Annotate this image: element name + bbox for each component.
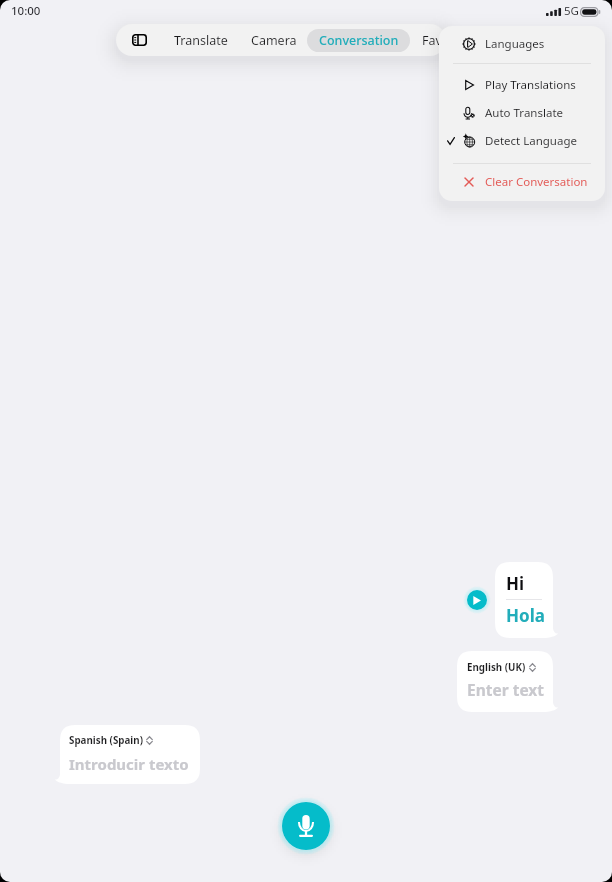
button[interactable]: Clear Conversation bbox=[439, 170, 605, 194]
button[interactable]: Hi bbox=[495, 562, 558, 638]
staticText: 5G bbox=[564, 3, 579, 19]
button[interactable]: Auto Translate bbox=[439, 101, 605, 125]
button[interactable]: Spanish (Spain) bbox=[69, 734, 153, 747]
button[interactable]: Sidebar bbox=[127, 28, 151, 52]
staticText: Languages bbox=[485, 36, 545, 52]
staticText: Conversation bbox=[319, 32, 399, 49]
staticText: 10:00 bbox=[11, 3, 41, 19]
button[interactable]: Play translation bbox=[467, 590, 487, 610]
button[interactable]: Record bbox=[282, 802, 330, 850]
staticText: Favourites bbox=[422, 32, 484, 49]
staticText: Auto Translate bbox=[485, 105, 564, 121]
staticText: Translate bbox=[174, 32, 228, 49]
button[interactable]: English (UK) bbox=[467, 661, 536, 674]
button[interactable]: Play Translations bbox=[439, 73, 605, 97]
staticText: Hola bbox=[506, 604, 545, 627]
staticText: Enter text bbox=[467, 679, 545, 700]
staticText: Play Translations bbox=[485, 77, 576, 93]
button[interactable]: Translate bbox=[162, 29, 240, 52]
button[interactable]: English (UK) bbox=[457, 651, 558, 712]
staticText: Detect Language bbox=[485, 133, 577, 149]
button[interactable]: Camera bbox=[239, 29, 309, 52]
button[interactable]: Languages bbox=[439, 32, 605, 56]
button[interactable]: Detect Language bbox=[439, 129, 605, 153]
staticText: Introducir texto bbox=[69, 754, 189, 774]
staticText: Clear Conversation bbox=[485, 174, 588, 190]
button[interactable]: Conversation bbox=[307, 29, 410, 52]
button[interactable]: Favourites bbox=[410, 29, 496, 52]
staticText: Camera bbox=[251, 32, 297, 49]
staticText: Hi bbox=[506, 572, 525, 595]
staticText: English (UK) bbox=[467, 661, 526, 674]
staticText: Spanish (Spain) bbox=[69, 734, 143, 747]
button[interactable]: Spanish (Spain) bbox=[55, 725, 200, 784]
